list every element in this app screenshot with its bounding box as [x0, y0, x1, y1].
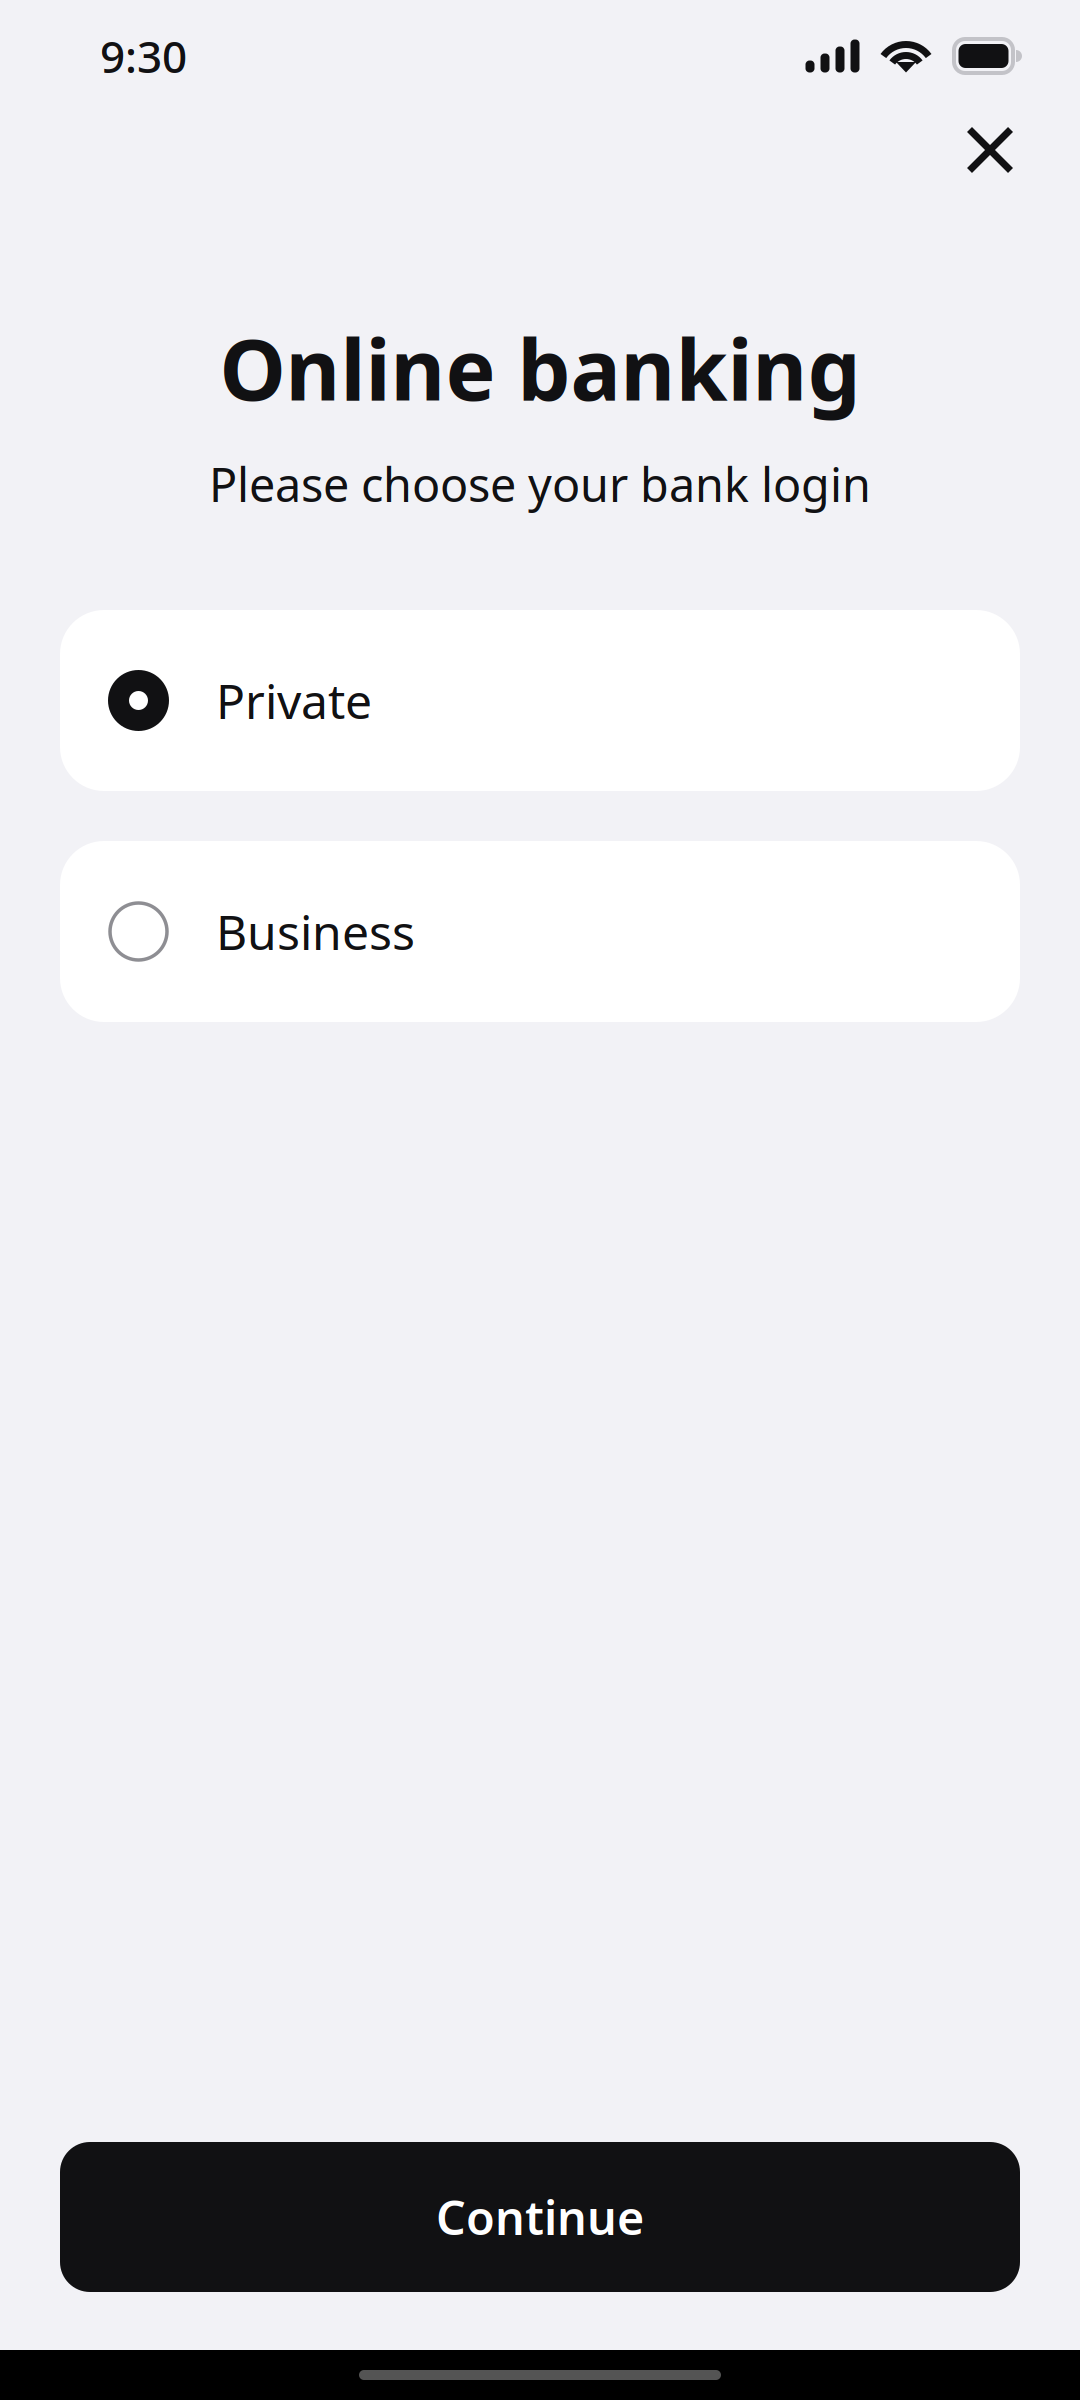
button[interactable]: Business [60, 841, 1020, 1022]
button[interactable]: Continue [60, 2142, 1020, 2292]
staticText: Please choose your bank login [209, 453, 871, 515]
staticText: Online banking [219, 312, 860, 424]
staticText: 9:30 [100, 27, 187, 85]
button[interactable]: Close [934, 94, 1046, 206]
button[interactable]: Private [60, 610, 1020, 791]
staticText: Private [216, 669, 372, 732]
staticText: Business [216, 900, 415, 963]
staticText: Continue [436, 2186, 644, 2248]
